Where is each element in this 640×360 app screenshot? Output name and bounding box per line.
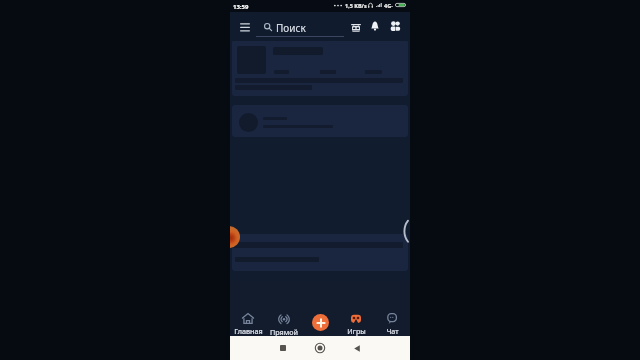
- staticText: 4G·: [384, 2, 393, 9]
- button[interactable]: Прямой: [266, 311, 302, 336]
- staticText: Поиск: [276, 21, 306, 35]
- button[interactable]: Чат: [374, 311, 410, 336]
- button[interactable]: Create post: [312, 314, 329, 331]
- button[interactable]: Back: [347, 338, 367, 358]
- staticText: 1,5 KB/s: [345, 2, 367, 9]
- staticText: Игры: [347, 326, 366, 336]
- button[interactable]: [232, 105, 408, 137]
- staticText: Главная: [234, 326, 263, 336]
- staticText: 13:59: [233, 3, 249, 11]
- button[interactable]: Главная: [230, 311, 266, 336]
- button[interactable]: VK Market: [347, 18, 365, 36]
- button[interactable]: Игры: [338, 311, 374, 336]
- button[interactable]: Home: [310, 338, 330, 358]
- button[interactable]: [232, 234, 408, 271]
- button[interactable]: [232, 41, 408, 96]
- button[interactable]: Friends: [387, 18, 403, 34]
- staticText: Чат: [386, 326, 399, 336]
- button[interactable]: Recents: [273, 338, 293, 358]
- button[interactable]: Menu: [235, 17, 254, 36]
- button[interactable]: Поиск: [256, 16, 344, 40]
- button[interactable]: Notifications: [367, 18, 383, 34]
- staticText: Прямой: [270, 327, 298, 336]
